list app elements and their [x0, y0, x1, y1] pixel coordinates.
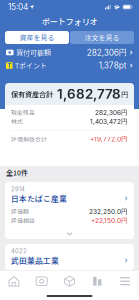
button[interactable]: メニュー: [111, 270, 139, 292]
staticText: Tポイント: [15, 60, 47, 70]
staticText: 買付可能額: [16, 47, 51, 57]
staticText: 282,306円: [87, 47, 127, 58]
button[interactable]: 2914: [0, 182, 139, 239]
staticText: 保有資産合計: [11, 89, 53, 99]
button[interactable]: 注文を見る: [70, 31, 134, 44]
staticText: 282,306円: [95, 108, 128, 117]
button[interactable]: T: [0, 59, 139, 72]
staticText: +19,772.0円: [90, 135, 128, 143]
staticText: 資産を見る: [19, 32, 54, 42]
button[interactable]: マーケット: [83, 270, 111, 292]
staticText: 円: [121, 89, 128, 99]
staticText: 評価損益: [11, 216, 35, 225]
staticText: 全10件: [6, 167, 28, 177]
staticText: 株式: [11, 117, 23, 126]
staticText: +22,150.0円: [91, 216, 128, 225]
staticText: 日本たばこ産業: [11, 193, 67, 204]
staticText: 武田薬品工業: [11, 255, 59, 266]
staticText: 1,403,472円: [90, 117, 128, 126]
staticText: 評価損益合計: [11, 135, 47, 143]
staticText: 注文を見る: [84, 32, 119, 42]
button[interactable]: 買付可能額: [0, 46, 139, 59]
staticText: 評価額: [11, 207, 29, 216]
staticText: 2914: [11, 185, 25, 193]
button[interactable]: 4022: [0, 244, 139, 270]
button[interactable]: 商品: [56, 270, 83, 292]
staticText: 15:04: [8, 2, 28, 12]
button[interactable]: 資産を見る: [5, 31, 69, 44]
staticText: 1,682,778: [57, 86, 121, 102]
staticText: ポートフォリオ: [41, 15, 97, 27]
button[interactable]: ホーム: [0, 270, 28, 292]
staticText: 232,250.0円: [89, 207, 128, 216]
staticText: 現金残高: [11, 108, 35, 117]
staticText: 1,378pt: [99, 60, 127, 70]
staticText: 4022: [11, 247, 27, 255]
staticText: T: [7, 61, 11, 70]
button[interactable]: スキャン: [28, 270, 56, 292]
